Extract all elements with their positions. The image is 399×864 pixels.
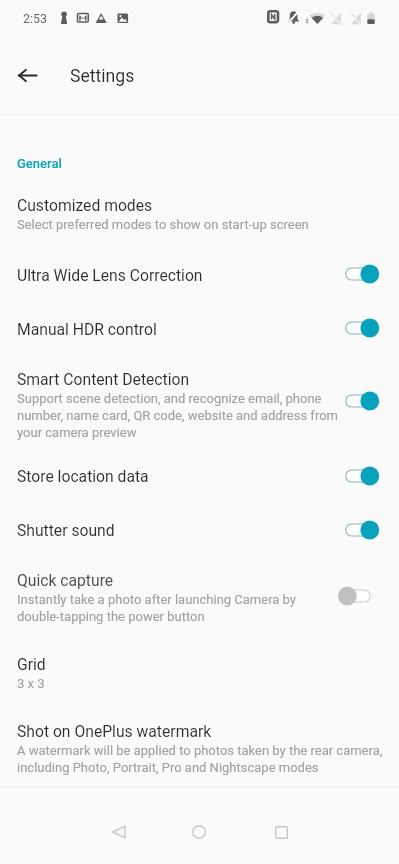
staticText: Grid [17, 655, 46, 673]
staticText: Store location data [17, 467, 149, 485]
button[interactable]: Smart Content Detection [337, 386, 379, 416]
button[interactable] [0, 455, 399, 499]
staticText: General [17, 156, 62, 171]
button[interactable] [0, 710, 399, 770]
staticText: Select preferred modes to show on start-… [17, 217, 309, 232]
staticText: Manual HDR control [17, 320, 157, 338]
staticText: 2:53 [23, 11, 48, 26]
button[interactable] [0, 509, 399, 553]
staticText: Support scene detection, and recognize e… [17, 391, 351, 440]
staticText: Ultra Wide Lens Correction [17, 266, 203, 284]
staticText: Smart Content Detection [17, 370, 190, 388]
button[interactable] [0, 308, 399, 352]
button[interactable]: Back [8, 56, 46, 94]
staticText: A watermark will be applied to photos ta… [17, 743, 397, 775]
button[interactable]: Manual HDR control [337, 313, 379, 343]
staticText: Customized modes [17, 196, 153, 214]
staticText: Instantly take a photo after launching C… [17, 592, 317, 624]
button[interactable]: Store location data [337, 461, 379, 491]
staticText: Settings [70, 66, 135, 87]
button[interactable] [0, 559, 399, 619]
button[interactable]: Recent apps [257, 808, 305, 856]
button[interactable] [0, 254, 399, 298]
button[interactable]: Back [95, 808, 143, 856]
staticText: Shot on OnePlus watermark [17, 722, 212, 740]
button[interactable]: Ultra Wide Lens Correction [337, 259, 379, 289]
button[interactable]: Quick capture [337, 581, 379, 611]
button[interactable] [0, 184, 399, 244]
button[interactable]: Home [175, 808, 223, 856]
staticText: Quick capture [17, 571, 114, 589]
staticText: Shutter sound [17, 521, 115, 539]
staticText: 3 x 3 [17, 676, 45, 691]
button[interactable]: Shutter sound [337, 515, 379, 545]
button[interactable] [0, 643, 399, 703]
button[interactable] [0, 358, 399, 418]
